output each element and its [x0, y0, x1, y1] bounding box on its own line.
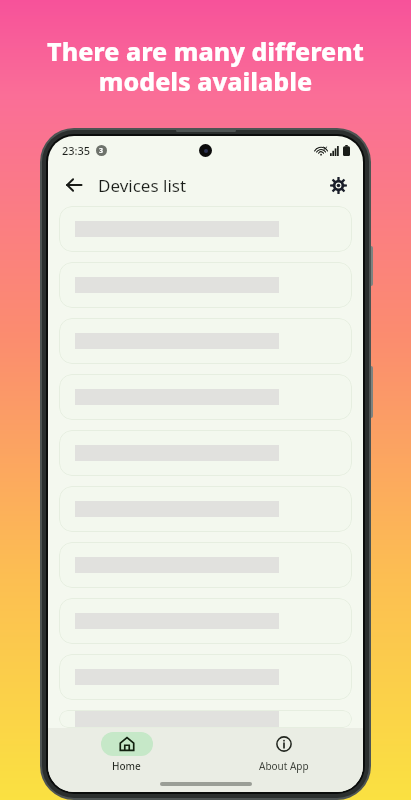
button[interactable]: About App [205, 728, 363, 776]
button[interactable] [59, 710, 352, 728]
button[interactable] [59, 542, 352, 588]
button[interactable] [59, 430, 352, 476]
button[interactable] [59, 262, 352, 308]
staticText: Devices list [98, 174, 187, 197]
button[interactable] [59, 598, 352, 644]
staticText: Home [112, 759, 141, 773]
staticText: About App [259, 759, 309, 773]
button[interactable] [59, 654, 352, 700]
button[interactable]: Settings [321, 168, 355, 202]
staticText: 3 [99, 146, 104, 156]
button[interactable] [59, 374, 352, 420]
button[interactable]: Home [48, 728, 205, 776]
button[interactable] [59, 206, 352, 252]
staticText: There are many different models availabl… [10, 34, 401, 98]
button[interactable] [59, 486, 352, 532]
button[interactable]: Back [56, 167, 92, 203]
button[interactable] [59, 318, 352, 364]
staticText: 23:35 [62, 143, 91, 158]
